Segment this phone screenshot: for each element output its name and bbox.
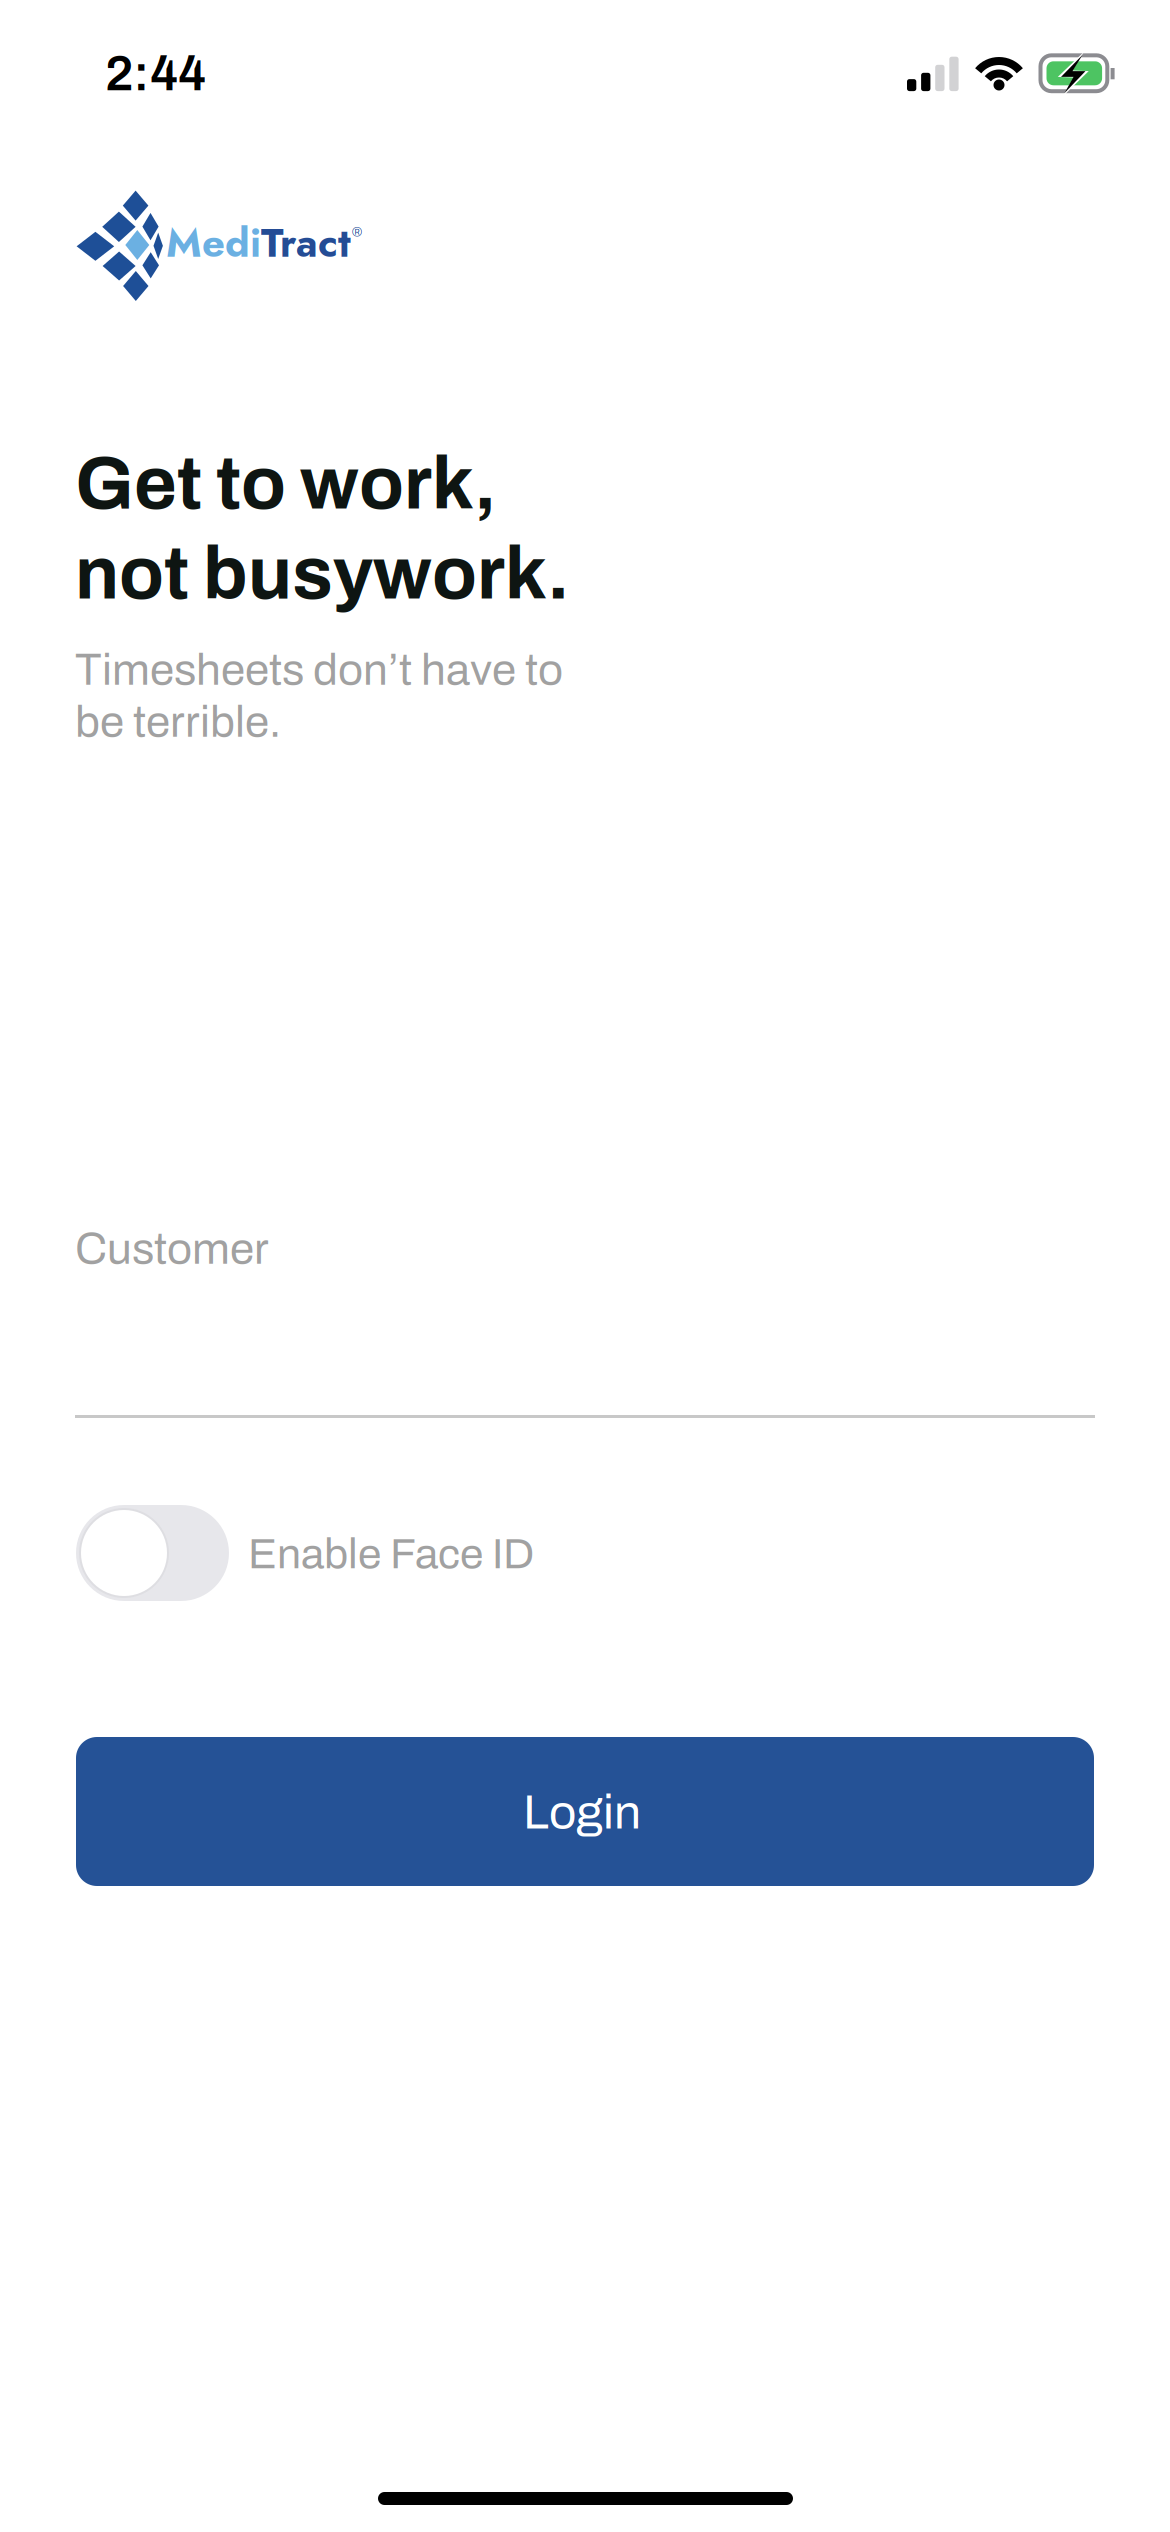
button[interactable]: Login bbox=[76, 1737, 1094, 1886]
staticText: be terrible. bbox=[75, 698, 281, 746]
staticText: not busywork. bbox=[75, 534, 570, 614]
staticText: Get to work, bbox=[75, 444, 497, 524]
staticText: Medi bbox=[166, 214, 261, 272]
staticText: Tract bbox=[261, 214, 351, 272]
staticText: ® bbox=[352, 225, 362, 240]
staticText: Timesheets don’t have to bbox=[75, 646, 563, 694]
staticText: Login bbox=[523, 1786, 641, 1839]
staticText: Enable Face ID bbox=[248, 1531, 534, 1577]
staticText: 2:44 bbox=[105, 47, 206, 101]
staticText: Customer bbox=[75, 1225, 269, 1273]
button[interactable]: Enable Face ID bbox=[76, 1505, 1096, 1601]
